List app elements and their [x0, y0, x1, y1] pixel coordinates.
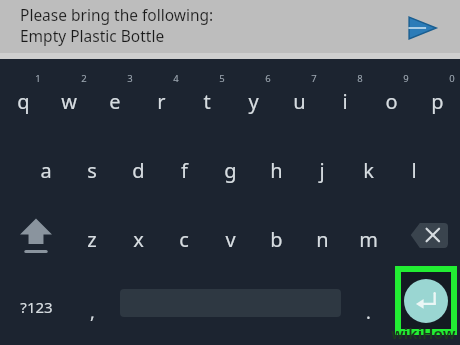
button[interactable]: j: [292, 157, 352, 187]
button[interactable]: c: [154, 226, 214, 256]
staticText: m: [359, 226, 378, 253]
staticText: 2: [81, 72, 87, 85]
button[interactable]: m: [338, 226, 398, 256]
staticText: v: [225, 226, 236, 253]
button[interactable]: n: [292, 226, 352, 256]
staticText: 6: [265, 72, 271, 85]
button[interactable]: a: [16, 157, 76, 187]
button[interactable]: 3: [100, 72, 160, 86]
staticText: 7: [311, 72, 317, 85]
staticText: ?123: [20, 297, 53, 317]
button[interactable]: y: [223, 88, 283, 118]
staticText: l: [411, 157, 417, 184]
button[interactable]: o: [361, 88, 421, 118]
staticText: x: [133, 226, 144, 253]
staticText: a: [40, 157, 52, 184]
button[interactable]: 4: [146, 72, 206, 86]
button[interactable]: g: [200, 157, 260, 187]
button[interactable]: .: [338, 300, 398, 327]
button[interactable]: s: [62, 157, 122, 187]
staticText: 0: [449, 72, 455, 85]
button[interactable]: Backspace: [406, 218, 452, 252]
button[interactable]: 0: [422, 72, 460, 86]
staticText: .: [366, 300, 371, 325]
button[interactable]: 5: [192, 72, 252, 86]
staticText: e: [109, 88, 121, 115]
button[interactable]: r: [131, 88, 191, 118]
button[interactable]: ?123: [6, 297, 66, 320]
staticText: 4: [173, 72, 179, 85]
button[interactable]: x: [108, 226, 168, 256]
button[interactable]: b: [246, 226, 306, 256]
button[interactable]: i: [315, 88, 375, 118]
staticText: n: [316, 226, 329, 253]
staticText: z: [87, 226, 97, 253]
button[interactable]: z: [62, 226, 122, 256]
staticText: u: [293, 88, 306, 115]
button[interactable]: t: [177, 88, 237, 118]
button[interactable]: [0, 0, 460, 53]
button[interactable]: ,: [62, 300, 122, 327]
staticText: 9: [403, 72, 409, 85]
staticText: b: [270, 226, 283, 253]
staticText: Please bring the following:: [20, 4, 214, 25]
button[interactable]: h: [246, 157, 306, 187]
staticText: t: [203, 88, 211, 115]
button[interactable]: Shift: [10, 212, 62, 260]
button[interactable]: f: [154, 157, 214, 187]
button[interactable]: l: [384, 157, 444, 187]
button[interactable]: 9: [376, 72, 436, 86]
staticText: g: [224, 157, 237, 184]
button[interactable]: q: [0, 88, 53, 118]
staticText: Empty Plastic Bottle: [20, 25, 165, 46]
button[interactable]: 7: [284, 72, 344, 86]
button[interactable]: 2: [54, 72, 114, 86]
staticText: o: [385, 88, 398, 115]
staticText: i: [342, 88, 348, 115]
button[interactable]: k: [338, 157, 398, 187]
staticText: c: [179, 226, 189, 253]
button[interactable]: p: [407, 88, 460, 118]
button[interactable]: Please bring the following:: [20, 3, 380, 51]
staticText: 1: [35, 72, 41, 85]
staticText: 3: [127, 72, 133, 85]
staticText: h: [270, 157, 283, 184]
staticText: y: [248, 88, 259, 115]
staticText: w: [61, 88, 77, 115]
staticText: d: [132, 157, 145, 184]
button[interactable]: v: [200, 226, 260, 256]
staticText: s: [87, 157, 97, 184]
staticText: p: [431, 88, 444, 115]
staticText: ,: [90, 300, 95, 325]
staticText: r: [157, 88, 166, 115]
button[interactable]: 1: [8, 72, 68, 86]
button[interactable]: Send: [402, 8, 442, 48]
staticText: 5: [219, 72, 225, 85]
button[interactable]: Enter: [401, 272, 451, 329]
button[interactable]: e: [85, 88, 145, 118]
staticText: f: [181, 157, 188, 184]
button[interactable]: 6: [238, 72, 298, 86]
staticText: j: [319, 157, 325, 184]
staticText: wikiHow: [391, 323, 456, 343]
button[interactable]: d: [108, 157, 168, 187]
button[interactable]: w: [39, 88, 99, 118]
button[interactable]: 8: [330, 72, 390, 86]
staticText: 8: [357, 72, 363, 85]
staticText: k: [363, 157, 374, 184]
staticText: q: [17, 88, 30, 115]
button[interactable]: u: [269, 88, 329, 118]
